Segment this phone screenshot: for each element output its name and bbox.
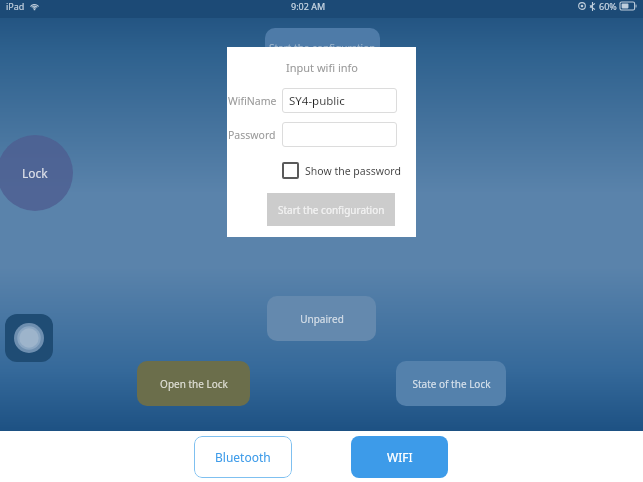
button[interactable]: WIFI bbox=[351, 436, 448, 478]
staticText: Open the Lock bbox=[160, 377, 228, 391]
staticText: Show the password bbox=[305, 164, 401, 178]
button[interactable]: Lock bbox=[0, 135, 73, 211]
staticText: Start the configuration bbox=[278, 203, 385, 217]
staticText: 60% bbox=[599, 0, 617, 12]
staticText: SY4-public bbox=[289, 93, 345, 109]
staticText: WifiName bbox=[228, 94, 277, 108]
staticText: Unpaired bbox=[300, 312, 344, 326]
staticText: iPad bbox=[6, 0, 25, 12]
button[interactable]: Open the Lock bbox=[137, 361, 250, 406]
button[interactable]: Device status bbox=[5, 314, 53, 362]
button[interactable]: State of the Lock bbox=[396, 361, 506, 406]
staticText: 9:02 AM bbox=[291, 0, 326, 12]
button[interactable]: Start the configuration bbox=[267, 193, 395, 226]
button[interactable]: SY4-public bbox=[282, 88, 397, 113]
button[interactable]: Bluetooth bbox=[194, 436, 292, 478]
button[interactable]: Show the password bbox=[282, 162, 401, 179]
staticText: Bluetooth bbox=[215, 449, 271, 465]
staticText: Input wifi info bbox=[286, 60, 358, 75]
button[interactable]: Start the configuration bbox=[265, 28, 380, 68]
staticText: Lock bbox=[22, 165, 48, 181]
staticText: Start the configuration bbox=[269, 41, 376, 55]
staticText: State of the Lock bbox=[412, 377, 491, 391]
staticText: Password bbox=[228, 128, 276, 142]
button[interactable]: Unpaired bbox=[267, 296, 376, 341]
button[interactable] bbox=[282, 122, 397, 147]
staticText: WIFI bbox=[387, 449, 413, 465]
